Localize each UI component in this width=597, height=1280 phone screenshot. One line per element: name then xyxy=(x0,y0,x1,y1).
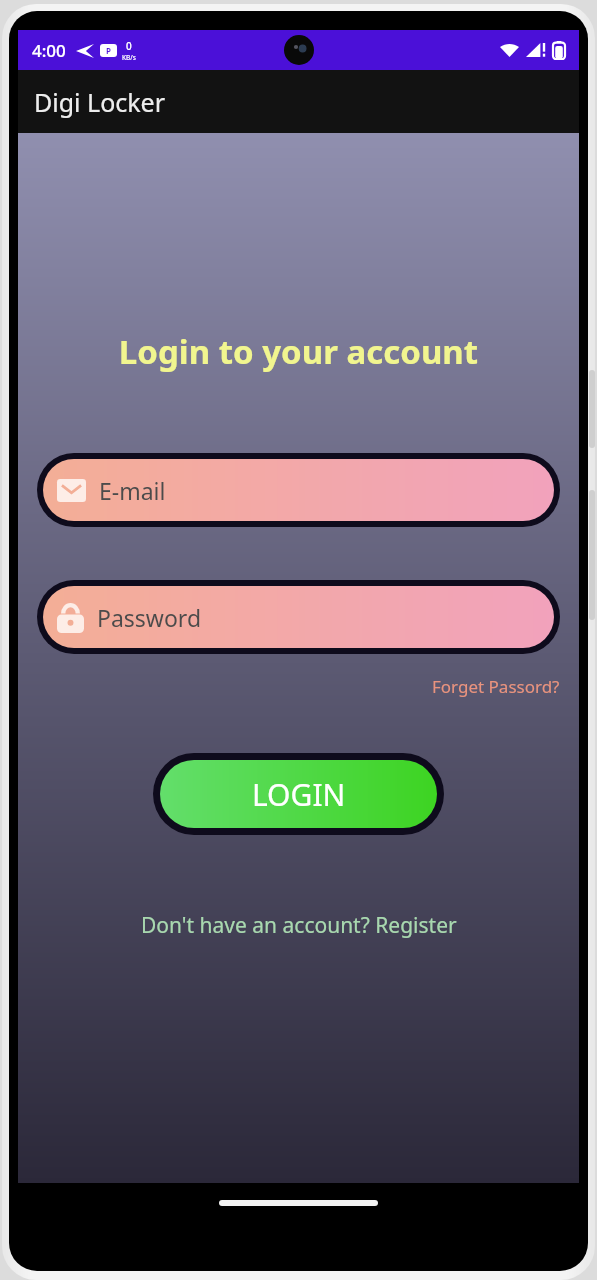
button[interactable]: E-mail xyxy=(43,459,554,521)
button[interactable]: Password xyxy=(43,586,554,648)
staticText: P xyxy=(106,45,111,56)
staticText: LOGIN xyxy=(252,774,346,815)
staticText: Login to your account xyxy=(18,329,579,374)
staticText: 0 xyxy=(126,39,132,53)
staticText: E-mail xyxy=(99,475,166,506)
staticText: Digi Locker xyxy=(34,85,166,119)
button[interactable]: Forget Passord? xyxy=(432,671,579,702)
staticText: 4:00 xyxy=(32,39,66,62)
staticText: KB/s xyxy=(122,53,136,62)
staticText: Password xyxy=(97,602,202,633)
button[interactable]: Don't have an account? Register xyxy=(131,906,467,945)
button[interactable]: LOGIN xyxy=(160,760,437,828)
